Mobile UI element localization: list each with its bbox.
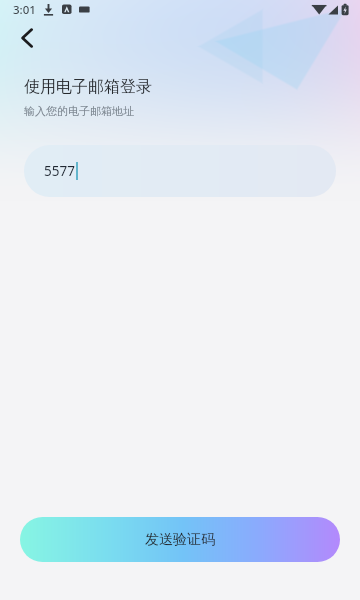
button[interactable]: Back	[5, 20, 49, 56]
staticText: 3:01	[13, 2, 36, 18]
staticText: 5577	[44, 162, 75, 180]
button[interactable]: 发送验证码	[20, 517, 340, 562]
staticText: 使用电子邮箱登录	[24, 77, 152, 97]
button[interactable]: 5577	[24, 145, 336, 197]
staticText: 输入您的电子邮箱地址	[24, 104, 134, 118]
staticText: 发送验证码	[145, 531, 215, 549]
